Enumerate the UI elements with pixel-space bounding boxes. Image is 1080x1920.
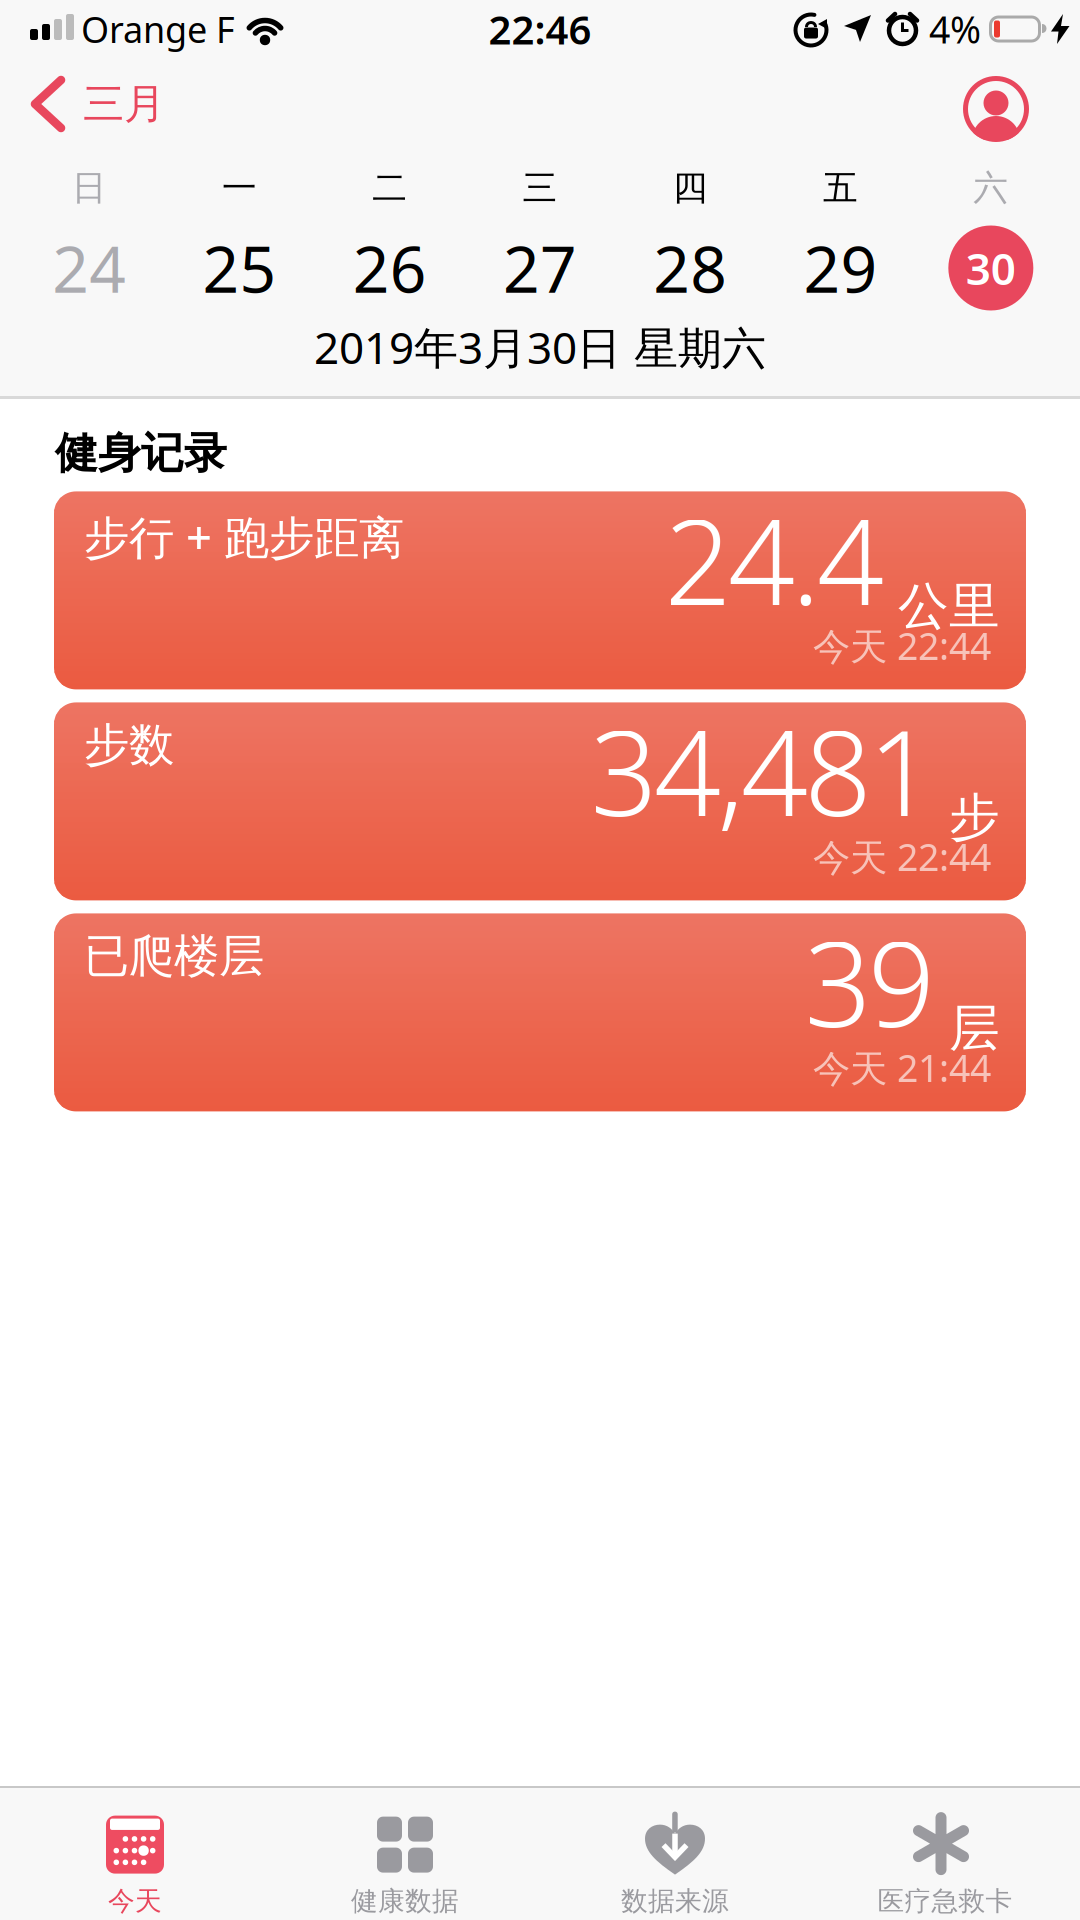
button[interactable]: 24 [14, 226, 164, 310]
button[interactable]: 医疗急救卡 [810, 1790, 1080, 1918]
staticText: 30 [966, 239, 1016, 297]
staticText: 健身记录 [55, 427, 227, 479]
button[interactable]: 步数 [54, 702, 1026, 900]
staticText: 六 [973, 167, 1008, 209]
staticText: Orange F [81, 5, 235, 53]
staticText: 数据来源 [621, 1885, 729, 1917]
button[interactable] [963, 71, 1080, 137]
staticText: 2019年3月30日 星期六 [314, 318, 766, 376]
staticText: 22:46 [488, 2, 591, 55]
staticText: 24.4 [664, 482, 884, 637]
button[interactable]: 30 [916, 226, 1066, 310]
staticText: 公里 [898, 575, 1000, 637]
staticText: 步数 [84, 717, 174, 773]
button[interactable]: 29 [765, 226, 916, 310]
staticText: 今天 22:44 [813, 832, 991, 881]
button[interactable]: 三月 [0, 75, 165, 133]
button[interactable]: 28 [615, 226, 765, 310]
button[interactable]: 今天 [0, 1790, 270, 1918]
staticText: 39 [804, 904, 935, 1059]
staticText: 今天 22:44 [813, 621, 991, 670]
button[interactable]: 数据来源 [540, 1790, 810, 1918]
staticText: 26 [353, 225, 427, 310]
staticText: 今天 21:44 [813, 1043, 991, 1092]
staticText: 24 [52, 225, 126, 310]
staticText: 医疗急救卡 [877, 1885, 1012, 1917]
staticText: 步 [949, 786, 1000, 848]
staticText: 28 [653, 225, 727, 310]
staticText: 25 [202, 225, 276, 310]
staticText: 4% [929, 4, 981, 54]
staticText: 已爬楼层 [84, 928, 264, 984]
staticText: 三月 [83, 79, 165, 129]
staticText: 步行 + 跑步距离 [84, 506, 404, 567]
button[interactable]: 26 [315, 226, 465, 310]
staticText: 五 [823, 167, 858, 209]
staticText: 健康数据 [351, 1885, 459, 1917]
staticText: 三 [522, 167, 557, 209]
button[interactable]: 27 [465, 226, 615, 310]
staticText: 日 [72, 167, 107, 209]
button[interactable]: 健康数据 [270, 1790, 540, 1918]
staticText: 29 [804, 225, 878, 310]
button[interactable]: 步行 + 跑步距离 [54, 491, 1026, 689]
button[interactable]: 25 [164, 226, 315, 310]
staticText: 二 [372, 167, 407, 209]
staticText: 今天 [108, 1885, 162, 1917]
button[interactable]: 已爬楼层 [54, 913, 1026, 1111]
staticText: 27 [503, 225, 577, 310]
staticText: 一 [222, 167, 257, 209]
staticText: 34,481 [590, 693, 935, 848]
staticText: 四 [673, 167, 708, 209]
staticText: 层 [949, 997, 1000, 1059]
